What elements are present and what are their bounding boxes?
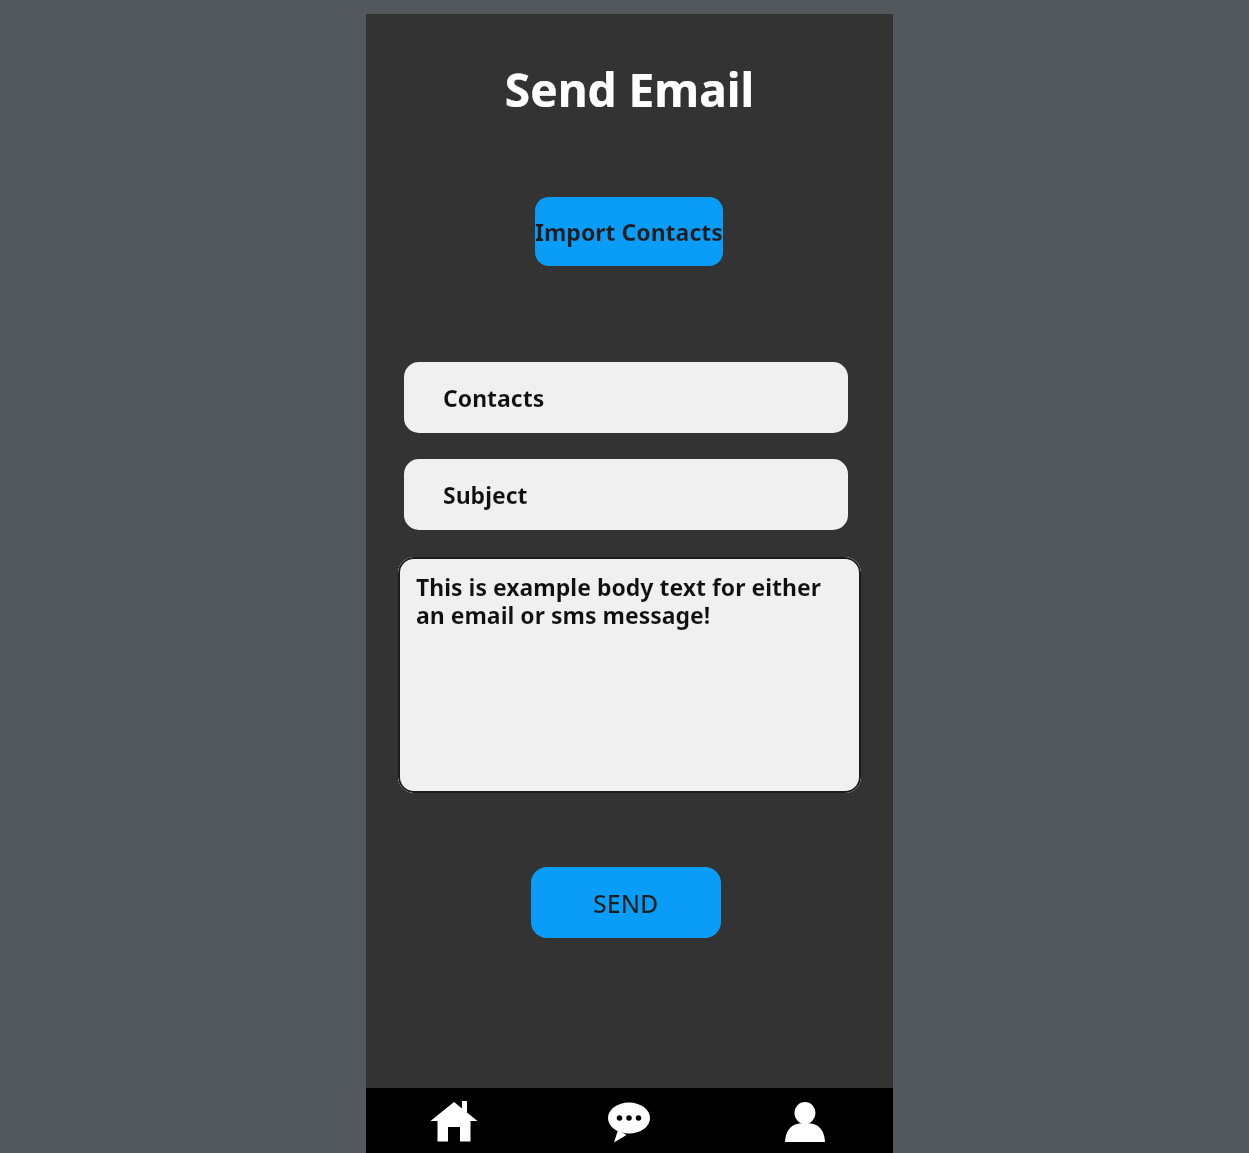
button[interactable]: Subject bbox=[404, 459, 848, 530]
staticText: Import Contacts bbox=[535, 216, 723, 247]
button[interactable]: SEND bbox=[531, 867, 721, 938]
staticText: Send Email bbox=[366, 58, 893, 121]
button[interactable]: Profile bbox=[717, 1088, 893, 1153]
button[interactable]: Contacts bbox=[404, 362, 848, 433]
staticText: Contacts bbox=[443, 382, 545, 413]
button[interactable]: This is example body text for either an … bbox=[398, 557, 861, 793]
staticText: SEND bbox=[593, 886, 659, 920]
button[interactable]: Import Contacts bbox=[535, 197, 723, 266]
staticText: This is example body text for either an … bbox=[416, 571, 843, 631]
staticText: Subject bbox=[443, 479, 528, 510]
button[interactable]: Messages bbox=[541, 1088, 717, 1153]
button[interactable]: Home bbox=[366, 1088, 541, 1153]
